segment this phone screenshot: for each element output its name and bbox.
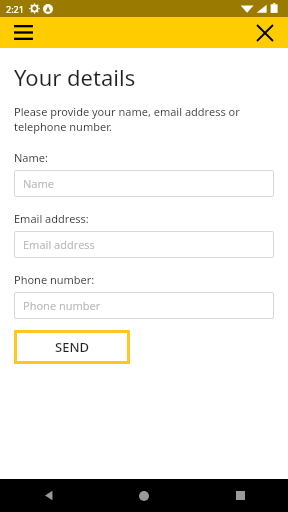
- button[interactable]: Back: [0, 479, 96, 512]
- staticText: 2:21: [6, 3, 24, 15]
- button[interactable]: Close: [248, 17, 282, 48]
- button[interactable]: Name: [14, 170, 274, 197]
- button[interactable]: Open navigation menu: [6, 17, 40, 48]
- button[interactable]: Recent apps: [192, 479, 288, 512]
- staticText: Name:: [14, 150, 48, 165]
- button[interactable]: Phone number: [14, 292, 274, 319]
- button[interactable]: Email address: [14, 231, 274, 258]
- staticText: Phone number:: [14, 272, 95, 287]
- staticText: Email address:: [14, 211, 89, 226]
- staticText: Your details: [14, 62, 136, 92]
- staticText: Phone number: [23, 298, 101, 313]
- button[interactable]: SEND: [14, 330, 130, 364]
- staticText: SEND: [55, 338, 89, 356]
- staticText: Name: [23, 176, 55, 191]
- staticText: Email address: [23, 237, 95, 252]
- staticText: Please provide your name, email address …: [14, 104, 274, 134]
- button[interactable]: Home: [96, 479, 192, 512]
